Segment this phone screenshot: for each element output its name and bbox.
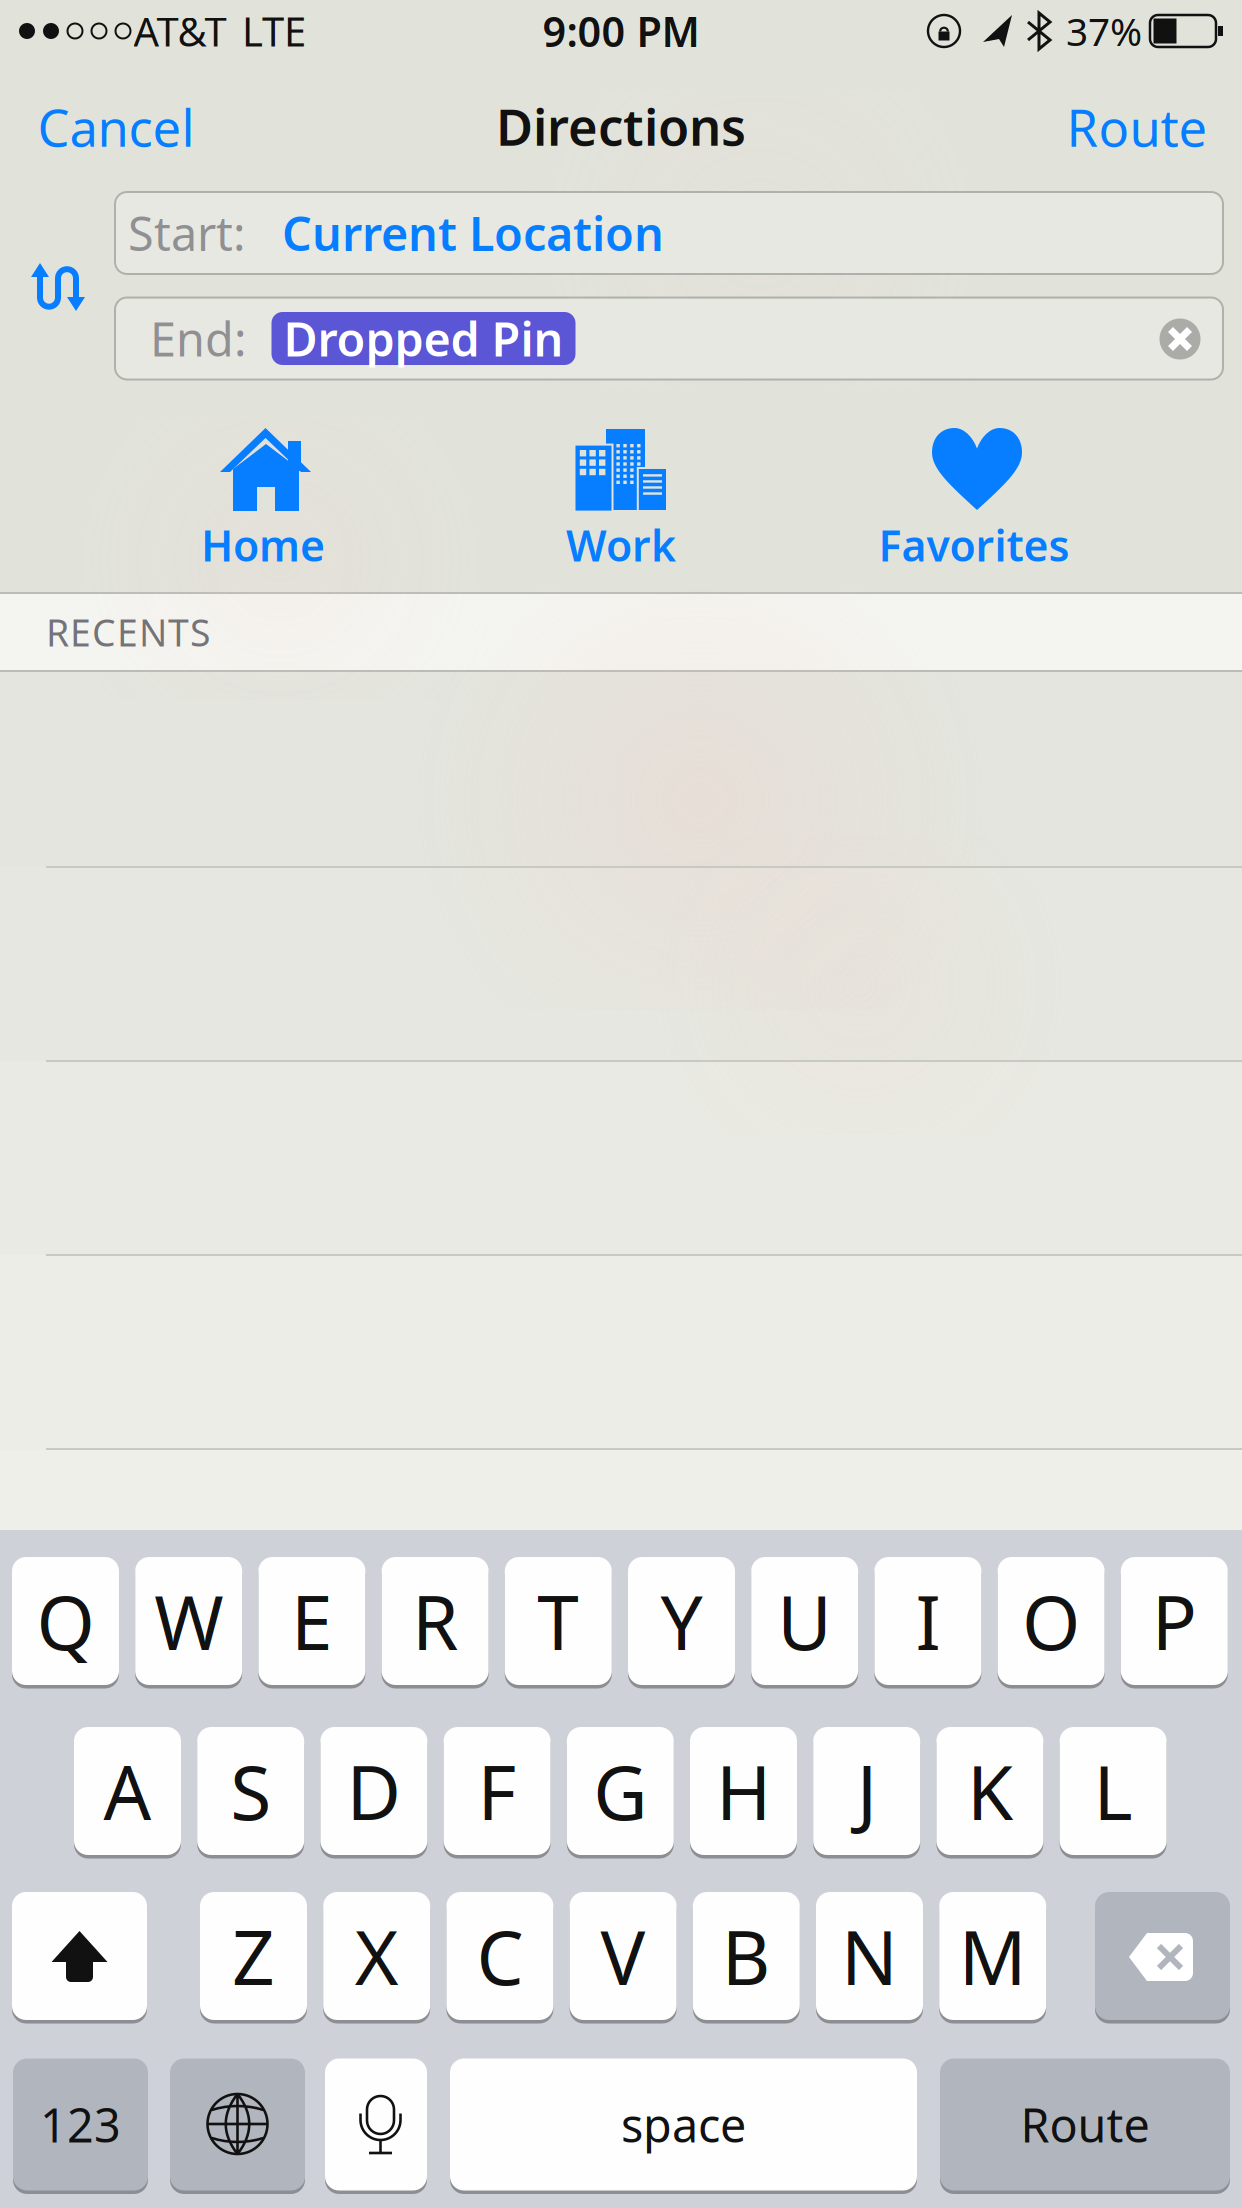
- button[interactable]: F: [444, 1725, 551, 1857]
- staticText: LTE: [242, 4, 306, 57]
- staticText: T: [537, 1571, 579, 1671]
- staticText: H: [716, 1741, 771, 1841]
- staticText: E: [291, 1571, 333, 1671]
- staticText: Start:: [128, 202, 246, 264]
- button[interactable]: [26, 260, 90, 314]
- button[interactable]: [1095, 1890, 1230, 2022]
- staticText: J: [857, 1741, 877, 1841]
- button[interactable]: Work: [511, 424, 731, 570]
- button[interactable]: [325, 2056, 427, 2192]
- button[interactable]: Y: [628, 1555, 735, 1687]
- button[interactable]: 123: [13, 2056, 148, 2192]
- button[interactable]: E: [258, 1555, 365, 1687]
- button[interactable]: [170, 2056, 305, 2192]
- staticText: A: [103, 1741, 151, 1841]
- button[interactable]: M: [939, 1890, 1046, 2022]
- staticText: Directions: [496, 92, 746, 160]
- button[interactable]: Q: [12, 1555, 119, 1687]
- staticText: S: [230, 1741, 271, 1841]
- staticText: I: [915, 1571, 940, 1671]
- staticText: U: [777, 1571, 832, 1671]
- staticText: L: [1094, 1741, 1133, 1841]
- button[interactable]: S: [197, 1725, 304, 1857]
- staticText: Route: [1020, 2093, 1149, 2155]
- button[interactable]: D: [320, 1725, 427, 1857]
- button[interactable]: L: [1060, 1725, 1167, 1857]
- button[interactable]: Route: [1066, 93, 1207, 161]
- staticText: Route: [1066, 93, 1207, 161]
- button[interactable]: Cancel: [37, 93, 194, 161]
- staticText: Cancel: [37, 93, 194, 161]
- button[interactable]: Start:: [115, 192, 1223, 274]
- staticText: 123: [40, 2093, 121, 2155]
- staticText: N: [841, 1906, 898, 2006]
- button[interactable]: [12, 1890, 147, 2022]
- staticText: Z: [232, 1906, 275, 2006]
- button[interactable]: W: [135, 1555, 242, 1687]
- button[interactable]: Route: [940, 2056, 1230, 2192]
- button[interactable]: Z: [200, 1890, 307, 2022]
- staticText: R: [412, 1571, 458, 1671]
- staticText: M: [959, 1906, 1027, 2006]
- staticText: Work: [566, 517, 676, 573]
- staticText: G: [593, 1741, 647, 1841]
- staticText: X: [355, 1906, 399, 2006]
- staticText: Y: [660, 1571, 702, 1671]
- button[interactable]: G: [567, 1725, 674, 1857]
- staticText: V: [601, 1906, 646, 2006]
- button[interactable]: P: [1121, 1555, 1228, 1687]
- staticText: Current Location: [282, 202, 664, 264]
- button[interactable]: End:: [115, 297, 1223, 379]
- button[interactable]: C: [446, 1890, 553, 2022]
- button[interactable]: Home: [153, 424, 373, 570]
- staticText: D: [346, 1741, 401, 1841]
- staticText: O: [1022, 1571, 1080, 1671]
- button[interactable]: H: [690, 1725, 797, 1857]
- staticText: Dropped Pin: [283, 307, 563, 369]
- button[interactable]: T: [505, 1555, 612, 1687]
- staticText: Favorites: [878, 517, 1069, 573]
- button[interactable]: [1158, 317, 1202, 361]
- staticText: W: [154, 1571, 223, 1671]
- button[interactable]: B: [693, 1890, 800, 2022]
- button[interactable]: R: [382, 1555, 489, 1687]
- button[interactable]: O: [998, 1555, 1105, 1687]
- staticText: K: [967, 1741, 1013, 1841]
- button[interactable]: I: [874, 1555, 981, 1687]
- staticText: C: [476, 1906, 523, 2006]
- staticText: 37%: [1066, 5, 1142, 57]
- button[interactable]: U: [751, 1555, 858, 1687]
- staticText: RECENTS: [46, 607, 210, 657]
- button[interactable]: N: [816, 1890, 923, 2022]
- staticText: F: [478, 1741, 517, 1841]
- button[interactable]: space: [450, 2056, 917, 2192]
- staticText: AT&T: [133, 4, 226, 57]
- button[interactable]: V: [570, 1890, 677, 2022]
- staticText: B: [722, 1906, 771, 2006]
- staticText: Q: [36, 1571, 94, 1671]
- button[interactable]: X: [323, 1890, 430, 2022]
- staticText: P: [1152, 1571, 1197, 1671]
- staticText: 9:00 PM: [542, 4, 699, 58]
- button[interactable]: A: [74, 1725, 181, 1857]
- staticText: End:: [150, 307, 247, 369]
- button[interactable]: J: [813, 1725, 920, 1857]
- button[interactable]: Favorites: [864, 424, 1084, 570]
- button[interactable]: K: [936, 1725, 1043, 1857]
- staticText: space: [621, 2093, 746, 2155]
- staticText: Home: [201, 517, 325, 573]
